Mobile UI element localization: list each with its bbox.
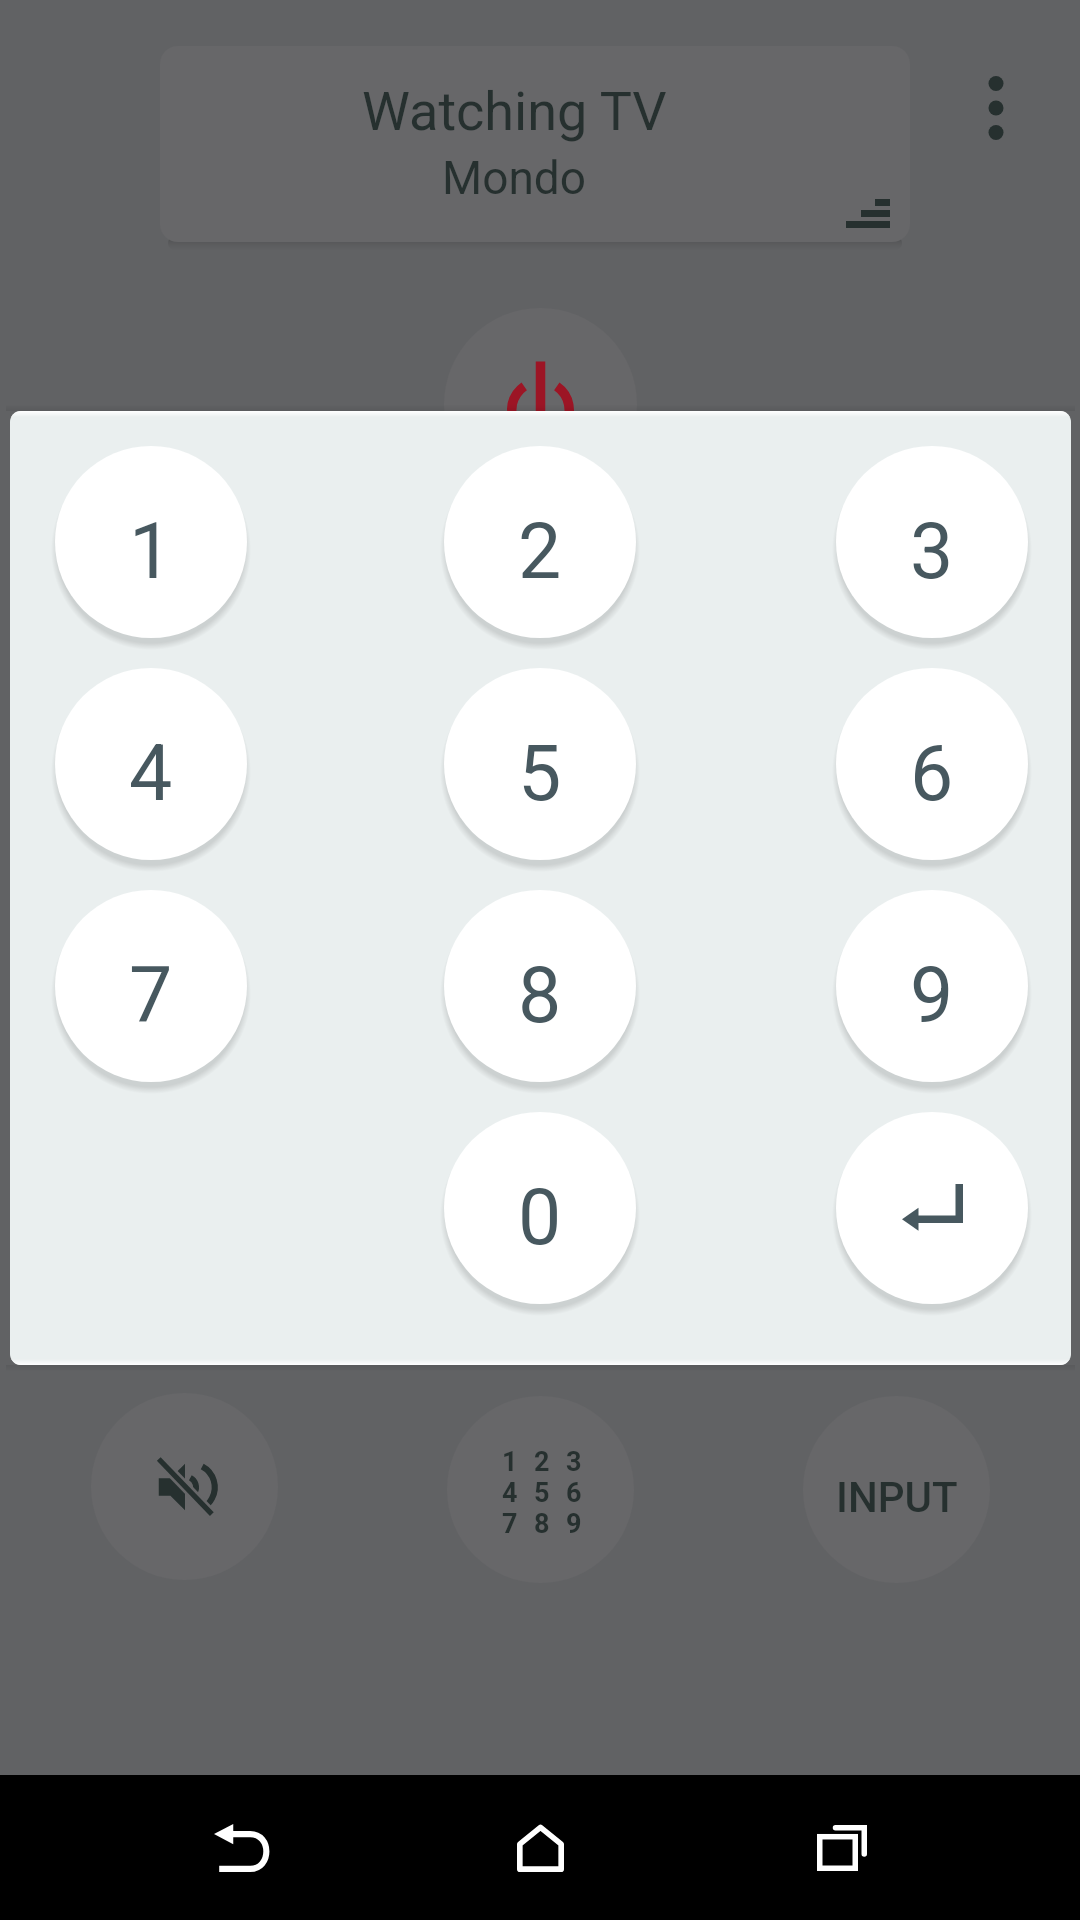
staticText: 8 xyxy=(518,951,562,1041)
staticText: 1 xyxy=(129,507,173,597)
staticText: 9 xyxy=(566,1508,582,1539)
staticText: 5 xyxy=(518,729,562,819)
staticText: INPUT xyxy=(836,1473,958,1522)
staticText: 1 xyxy=(502,1446,518,1477)
button[interactable]: Recents xyxy=(762,1775,922,1920)
staticText: 6 xyxy=(910,729,954,819)
staticText: 4 xyxy=(129,729,173,819)
button[interactable]: 3 xyxy=(836,446,1028,638)
staticText: 3 xyxy=(910,507,954,597)
staticText: Mondo xyxy=(442,151,586,205)
staticText: 7 xyxy=(502,1508,518,1539)
staticText: 7 xyxy=(129,951,173,1041)
button[interactable]: Mute xyxy=(91,1393,278,1580)
button[interactable]: More options xyxy=(958,44,1034,172)
staticText: 2 xyxy=(518,507,562,597)
staticText: 6 xyxy=(566,1477,582,1508)
button[interactable]: Home xyxy=(460,1775,620,1920)
button[interactable]: 2 xyxy=(444,446,636,638)
staticText: 3 xyxy=(566,1446,582,1477)
staticText: 4 xyxy=(502,1477,518,1508)
button[interactable]: 6 xyxy=(836,668,1028,860)
button[interactable]: Power xyxy=(444,308,637,501)
button[interactable]: Keypad xyxy=(447,1396,634,1583)
staticText: 2 xyxy=(534,1446,550,1477)
button[interactable]: Watching TV xyxy=(160,46,910,242)
staticText: 0 xyxy=(518,1173,562,1263)
staticText: 5 xyxy=(534,1477,550,1508)
button[interactable]: INPUT xyxy=(803,1396,990,1583)
button[interactable]: 4 xyxy=(55,668,247,860)
button[interactable]: 7 xyxy=(55,890,247,1082)
button[interactable]: 5 xyxy=(444,668,636,860)
staticText: Watching TV xyxy=(362,80,667,143)
button[interactable]: 0 xyxy=(444,1112,636,1304)
button[interactable]: 9 xyxy=(836,890,1028,1082)
staticText: 9 xyxy=(910,951,954,1041)
staticText: 8 xyxy=(534,1508,550,1539)
button[interactable]: 1 xyxy=(55,446,247,638)
button[interactable]: 8 xyxy=(444,890,636,1082)
button[interactable]: Back xyxy=(160,1775,320,1920)
button[interactable]: Enter xyxy=(836,1112,1028,1304)
